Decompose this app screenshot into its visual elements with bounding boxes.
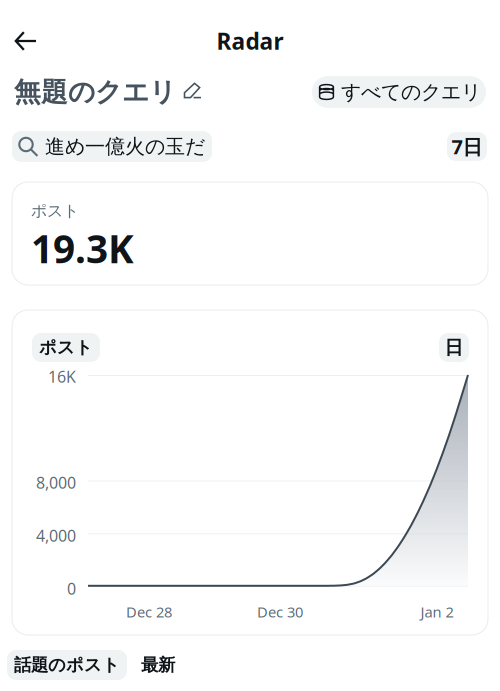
staticText: Dec 30 [257, 602, 303, 621]
staticText: 7日 [451, 133, 482, 160]
staticText: ポスト [39, 337, 93, 358]
staticText: 進め一億火の玉だ [45, 134, 205, 159]
staticText: 日 [444, 336, 463, 359]
staticText: 19.3K [31, 223, 134, 274]
button[interactable]: Rename query [176, 77, 209, 107]
button[interactable]: Back [0, 20, 51, 62]
button[interactable]: 話題のポスト [7, 650, 127, 680]
button[interactable]: すべてのクエリ [312, 76, 486, 108]
staticText: Jan 2 [420, 602, 453, 621]
staticText: ポスト [31, 201, 79, 221]
button[interactable]: 7日 [447, 132, 487, 161]
staticText: 0 [67, 578, 76, 599]
staticText: 無題のクエリ [14, 76, 176, 108]
staticText: Radar [216, 26, 283, 56]
staticText: すべてのクエリ [341, 80, 481, 104]
staticText: 8,000 [36, 472, 76, 493]
staticText: Dec 28 [126, 602, 172, 621]
staticText: 最新 [141, 654, 175, 676]
staticText: 16K [48, 366, 76, 387]
staticText: 話題のポスト [14, 654, 120, 676]
button[interactable]: 進め一億火の玉だ [12, 131, 212, 162]
button[interactable]: 最新 [139, 650, 177, 680]
staticText: 4,000 [36, 525, 76, 546]
button[interactable]: ポスト [32, 333, 100, 362]
button[interactable]: 日 [439, 333, 469, 362]
